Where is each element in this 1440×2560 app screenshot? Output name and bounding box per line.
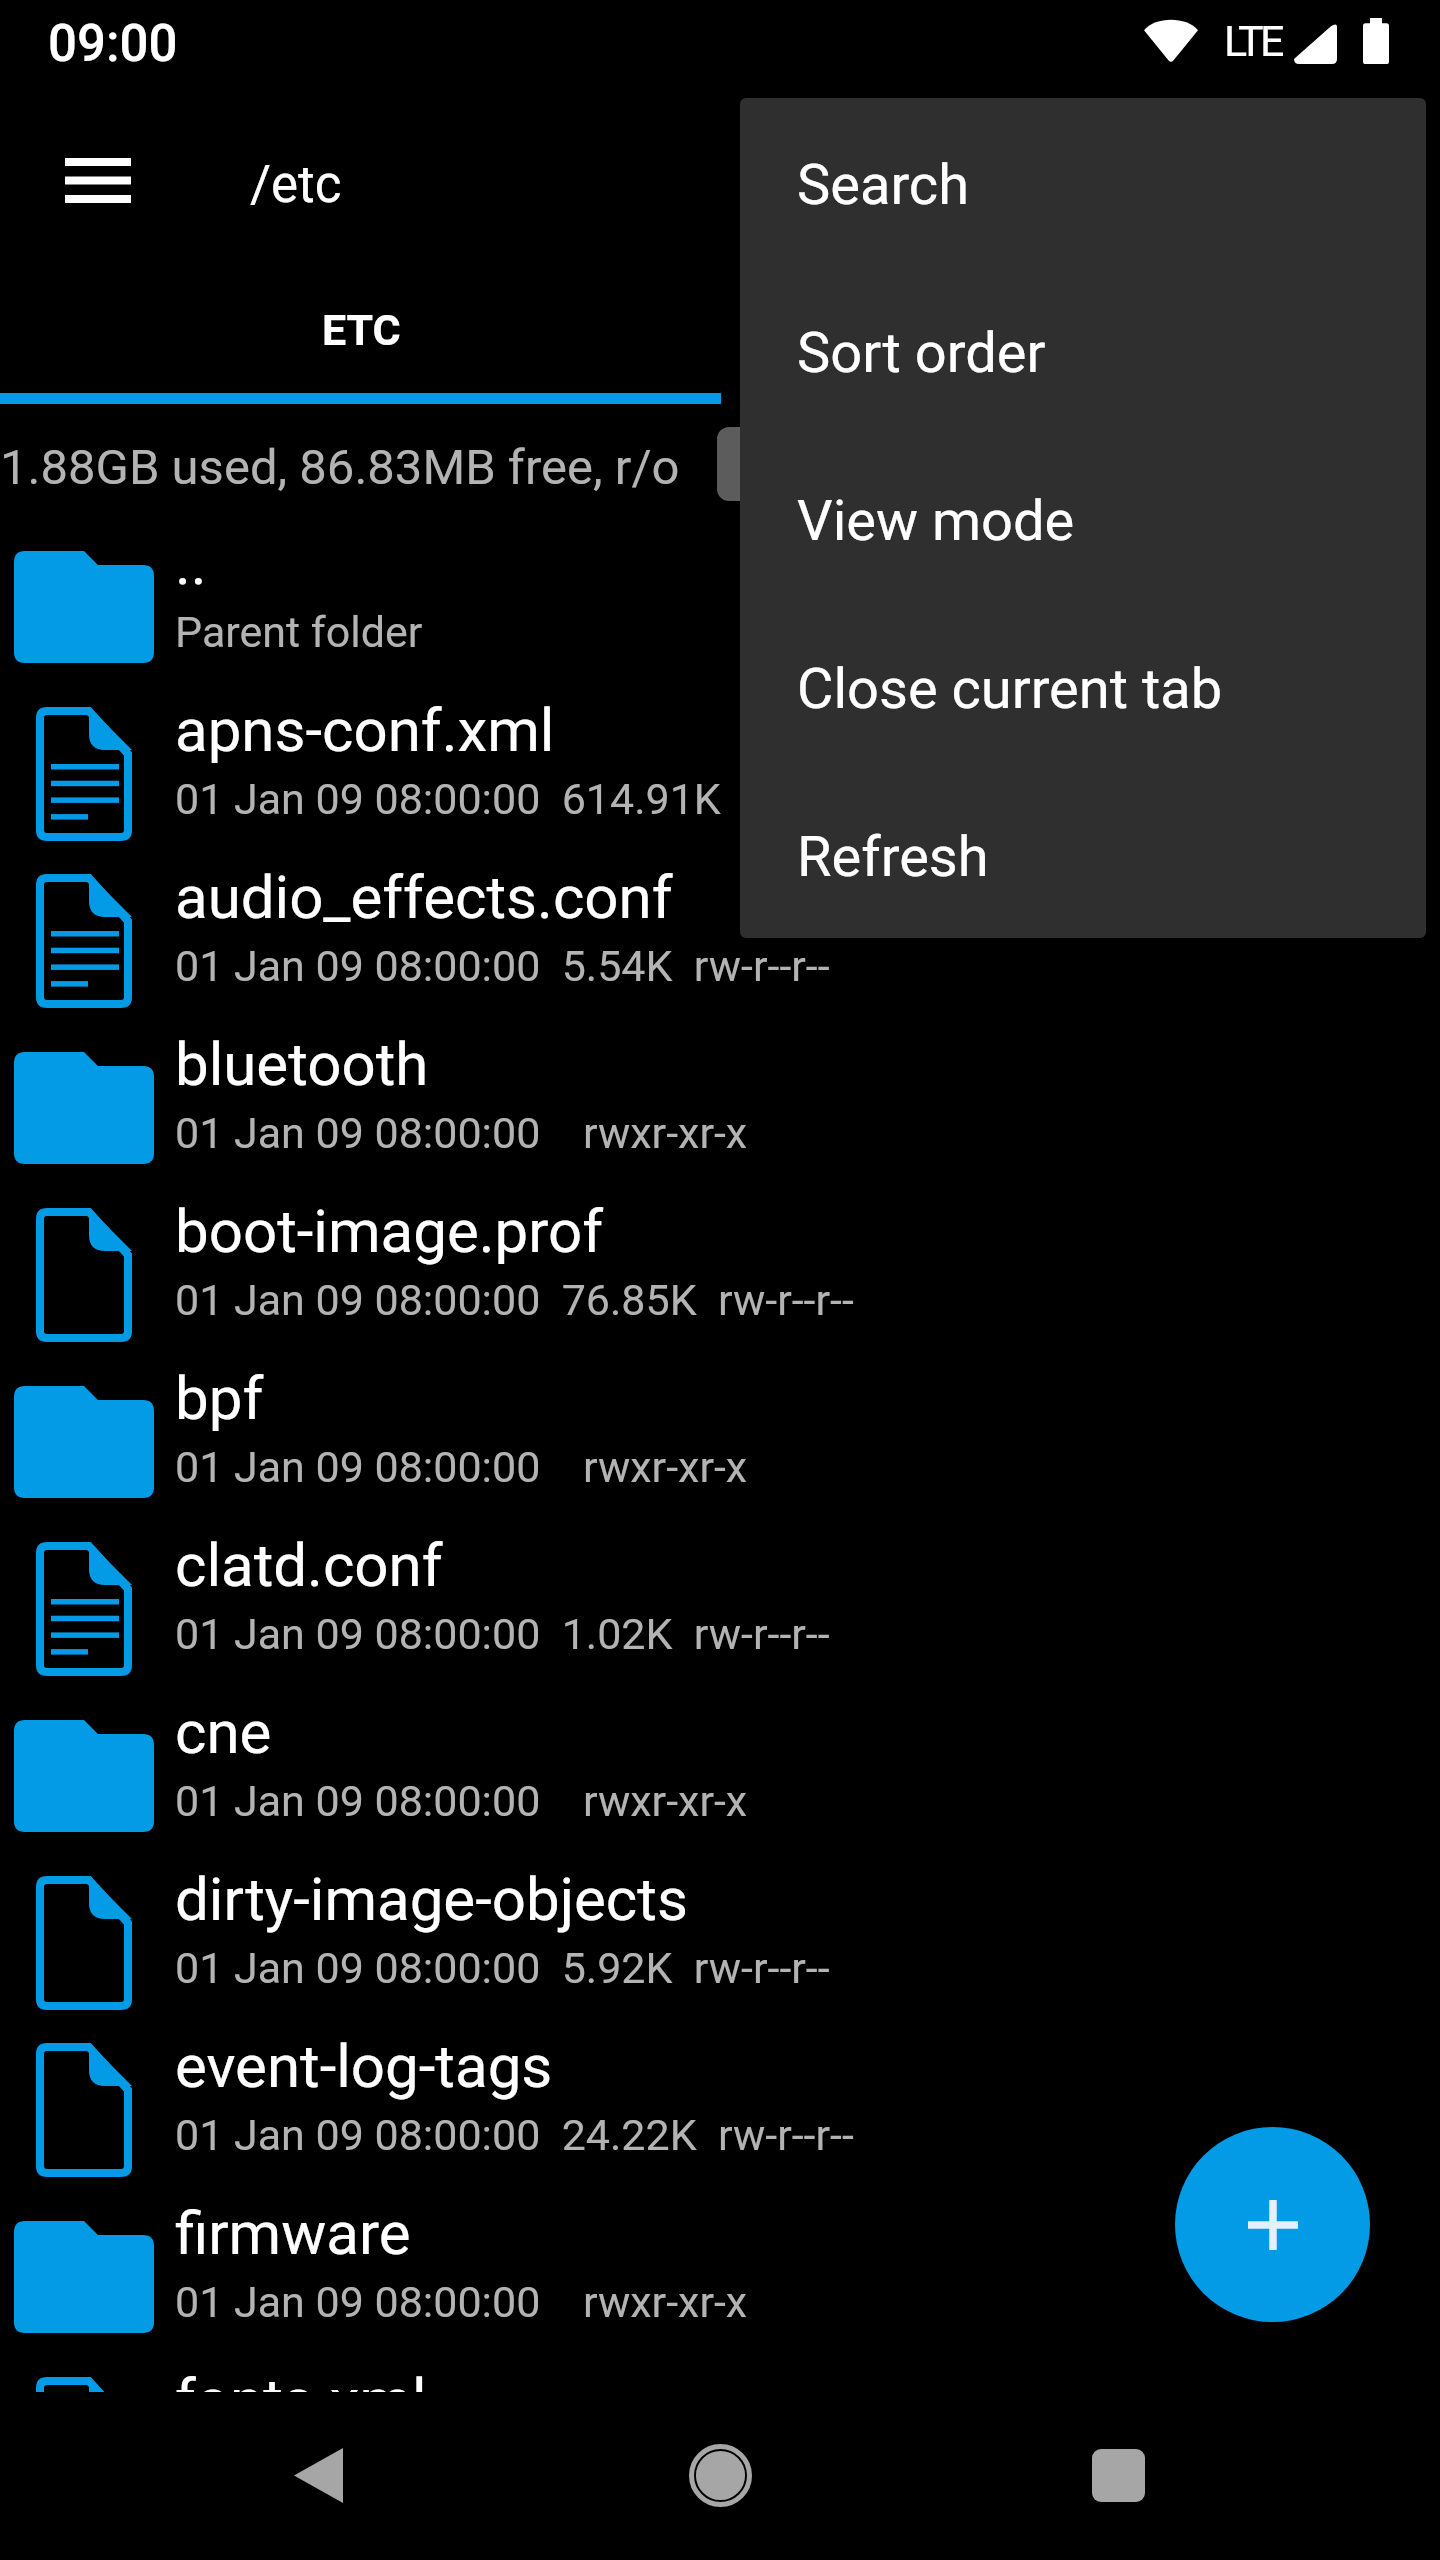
staticText: Parent folder [175,607,423,657]
button[interactable]: dirty-image-objects [0,1859,1440,2026]
button[interactable]: Sort [717,427,837,501]
button[interactable]: Add [1175,2127,1370,2322]
staticText: 01 Jan 09 08:00:00 614.91K rw-r--r-- [175,774,878,824]
button[interactable]: firmware [0,2193,1440,2360]
button[interactable]: ETC [0,260,721,404]
staticText: boot-image.prof [175,1196,604,1266]
staticText: 01 Jan 09 08:00:00 rwxr-xr-x [175,1108,748,1158]
button[interactable]: View mode [740,437,1426,605]
staticText: event-log-tags [175,2031,553,2101]
staticText: 01 Jan 09 08:00:00 1.02K rw-r--r-- [175,1609,830,1659]
button[interactable]: boot-image.prof [0,1191,1440,1358]
staticText: bpf [175,1363,264,1433]
button[interactable]: Home [620,2391,820,2559]
button[interactable]: Recent apps [1018,2391,1218,2559]
button[interactable]: .. [0,523,1440,690]
staticText: fonts.xml [175,2365,427,2435]
staticText: 01 Jan 09 08:00:00 rwxr-xr-x [175,1442,748,1492]
button[interactable]: apns-conf.xml [0,690,1440,857]
button[interactable]: clatd.conf [0,1525,1440,1692]
staticText: 01 Jan 09 08:00:00 18.41K rw-r--r-- [175,2444,854,2494]
staticText: 01 Jan 09 08:00:00 5.92K rw-r--r-- [175,1943,830,1993]
staticText: View mode [797,488,1075,554]
staticText: audio_effects.conf [175,862,673,932]
button[interactable]: bpf [0,1358,1440,1525]
staticText: LTE [1224,16,1281,66]
button[interactable]: Back [218,2391,418,2559]
staticText: Search [797,152,970,218]
staticText: Sort order [797,320,1046,386]
button[interactable]: Open navigation drawer [26,108,170,252]
staticText: clatd.conf [175,1530,443,1600]
button[interactable]: bluetooth [0,1024,1440,1191]
staticText: apns-conf.xml [175,695,555,765]
staticText: Refresh [797,824,989,890]
staticText: firmware [175,2198,411,2268]
staticText: bluetooth [175,1029,429,1099]
button[interactable]: Search [740,101,1426,269]
button[interactable]: Refresh [740,773,1426,938]
staticText: ETC [322,305,401,355]
button[interactable]: cne [0,1692,1440,1859]
button[interactable]: event-log-tags [0,2026,1440,2193]
staticText: /etc [250,155,342,215]
button[interactable]: Sort order [740,269,1426,437]
staticText: 01 Jan 09 08:00:00 76.85K rw-r--r-- [175,1275,854,1325]
staticText: cne [175,1697,272,1767]
staticText: .. [175,528,207,598]
staticText: 1.88GB used, 86.83MB free, r/o [0,439,680,496]
staticText: dirty-image-objects [175,1864,688,1934]
button[interactable]: Close current tab [740,605,1426,773]
staticText: 01 Jan 09 08:00:00 5.54K rw-r--r-- [175,941,830,991]
staticText: 01 Jan 09 08:00:00 rwxr-xr-x [175,2277,748,2327]
staticText: 01 Jan 09 08:00:00 rwxr-xr-x [175,1776,748,1826]
button[interactable]: audio_effects.conf [0,857,1440,1024]
button[interactable]: fonts.xml [0,2360,1440,2527]
staticText: 01 Jan 09 08:00:00 24.22K rw-r--r-- [175,2110,854,2160]
staticText: 09:00 [48,14,178,74]
staticText: Close current tab [797,656,1223,722]
